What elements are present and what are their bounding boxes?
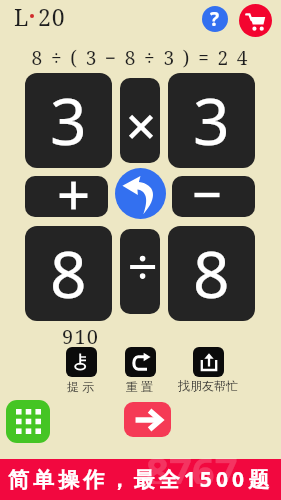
staticText: 简单操作，最全1500题 [8,465,274,494]
button[interactable]: 3 [25,73,112,168]
button[interactable]: Levels [6,400,50,443]
staticText: 3 [193,77,230,164]
button[interactable]: 找朋友帮忙 [168,347,248,393]
staticText: 提 示 [67,378,95,394]
button[interactable]: 8 [168,226,255,321]
button[interactable]: Plus [25,176,108,217]
button[interactable]: Shop [239,4,272,37]
staticText: 8767 [146,443,281,484]
button[interactable]: 8767 [0,459,281,500]
button[interactable]: Minus [172,176,255,217]
staticText: 20 [38,1,66,32]
button[interactable]: Undo [115,168,166,219]
button[interactable]: 提 示 [41,347,121,394]
button[interactable]: 3 [168,73,255,168]
staticText: L [14,1,29,32]
staticText: 3 [50,77,87,164]
staticText: 910 [62,323,100,350]
button[interactable]: 8 [25,226,112,321]
staticText: 8 [193,230,230,317]
button[interactable]: Next [124,402,171,437]
staticText: 重 置 [126,378,154,394]
staticText: 8 ÷ ( 3 − 8 ÷ 3 ) = 2 4 [0,45,281,71]
button[interactable]: Help [202,6,228,32]
staticText: 找朋友帮忙 [178,378,238,393]
staticText: ? [210,6,220,32]
button[interactable]: 重 置 [100,347,180,394]
button[interactable]: Divide [120,229,160,314]
button[interactable]: Multiply [120,78,160,163]
staticText: 8 [50,230,87,317]
